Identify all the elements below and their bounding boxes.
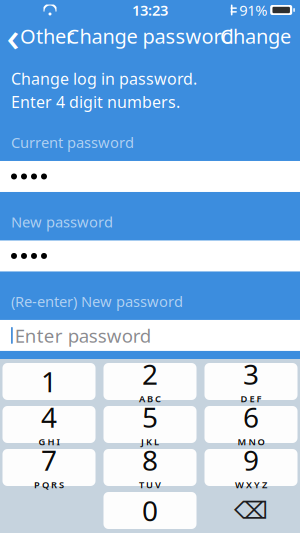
staticText: 7 (41, 441, 57, 478)
button[interactable]: 5 (103, 406, 196, 443)
staticText: Change log in password. (11, 68, 197, 89)
staticText: ⌫ (234, 497, 268, 524)
staticText: W X Y Z (235, 478, 267, 491)
staticText: 8 (142, 441, 158, 478)
staticText: G H I (38, 435, 59, 448)
staticText: 6 (243, 398, 259, 435)
staticText: New password (11, 212, 113, 231)
staticText: M N O (237, 435, 264, 448)
staticText: D E F (240, 392, 261, 405)
button[interactable]: 0 (103, 492, 196, 529)
button[interactable]: 7 (2, 449, 95, 486)
staticText: 5 (142, 398, 158, 435)
staticText: 3 (243, 355, 259, 392)
staticText: Change password (66, 23, 233, 49)
button[interactable]: 4 (2, 406, 95, 443)
staticText: 91% (239, 0, 267, 20)
staticText: (Re-enter) New password (11, 291, 183, 311)
staticText: A B C (139, 392, 161, 405)
staticText: T U V (139, 478, 161, 491)
staticText: 9 (243, 441, 259, 478)
staticText: P Q R S (34, 478, 64, 491)
button[interactable]: 3 (204, 363, 297, 400)
staticText: Change (220, 23, 291, 49)
button[interactable]: 9 (204, 449, 297, 486)
staticText: 0 (142, 492, 158, 529)
button[interactable]: Change (214, 21, 297, 51)
button[interactable]: 1 (2, 363, 95, 400)
staticText: 1 (41, 363, 57, 400)
button[interactable]: ‹ (3, 21, 79, 51)
staticText: 13:23 (132, 0, 168, 20)
staticText: Enter password (15, 323, 151, 348)
button[interactable]: Delete (204, 492, 297, 529)
staticText: Other (20, 23, 74, 49)
staticText: ‹ (6, 9, 19, 62)
button[interactable]: 8 (103, 449, 196, 486)
button[interactable]: 6 (204, 406, 297, 443)
staticText: 4 (41, 398, 57, 435)
staticText: J K L (141, 435, 159, 448)
staticText: 2 (142, 355, 158, 392)
staticText: Enter 4 digit numbers. (11, 91, 180, 112)
staticText: Current password (11, 132, 134, 152)
button[interactable]: 2 (103, 363, 196, 400)
